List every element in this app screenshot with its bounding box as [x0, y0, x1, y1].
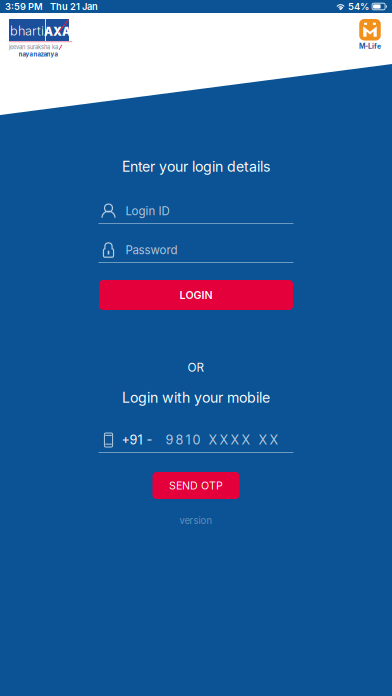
staticText: LOGIN: [179, 288, 212, 301]
staticText: 54%: [348, 1, 369, 12]
staticText: Login ID: [125, 204, 169, 218]
staticText: jeevan suraksha ka: [9, 44, 58, 51]
staticText: AXA: [44, 25, 71, 38]
staticText: naya nazariya: [18, 51, 57, 58]
staticText: bharti: [10, 23, 44, 38]
staticText: +91 -: [121, 432, 152, 448]
staticText: Enter your login details: [122, 158, 270, 175]
staticText: 3:59 PM: [5, 1, 43, 12]
staticText: Login with your mobile: [122, 389, 270, 406]
button[interactable]: LOGIN: [99, 280, 293, 310]
staticText: version: [179, 515, 212, 526]
staticText: M-Life: [359, 42, 381, 50]
staticText: Thu 21 Jan: [50, 1, 98, 12]
button[interactable]: SEND OTP: [152, 472, 239, 499]
staticText: 9810 XXXX XX: [165, 432, 278, 448]
staticText: Password: [125, 243, 177, 257]
staticText: OR: [187, 360, 204, 375]
staticText: SEND OTP: [169, 479, 223, 492]
